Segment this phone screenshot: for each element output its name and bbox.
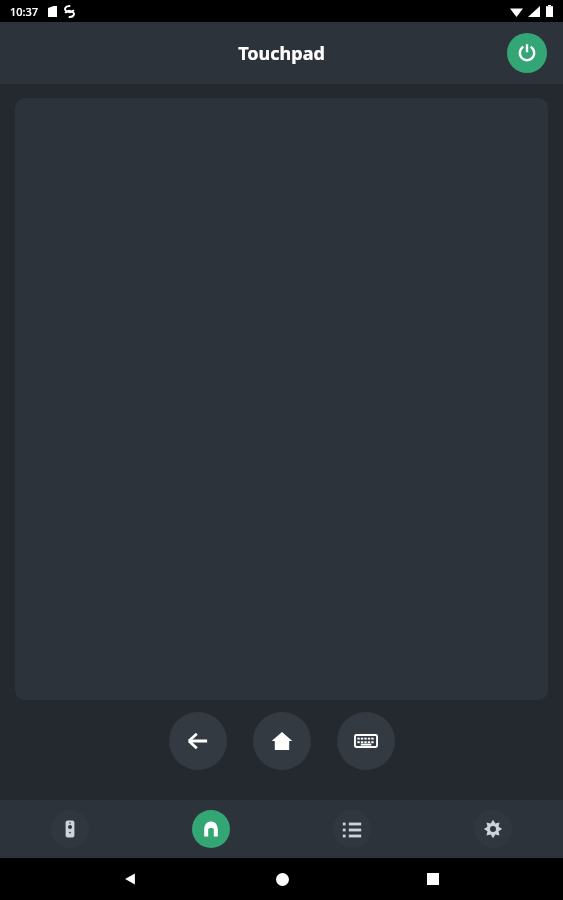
button[interactable]: Back xyxy=(109,858,151,900)
staticText: 10:37 xyxy=(10,4,39,19)
button[interactable]: Remote xyxy=(0,800,140,858)
button[interactable]: Keyboard xyxy=(337,712,395,770)
button[interactable]: Settings xyxy=(422,800,563,858)
button[interactable]: Power xyxy=(507,33,547,73)
button[interactable]: Home xyxy=(261,858,303,900)
button[interactable]: Back xyxy=(169,712,227,770)
button[interactable]: List xyxy=(281,800,422,858)
button[interactable]: Recents xyxy=(412,858,454,900)
staticText: Touchpad xyxy=(238,41,325,66)
button[interactable]: Touchpad xyxy=(140,800,281,858)
button[interactable]: Home xyxy=(253,712,311,770)
